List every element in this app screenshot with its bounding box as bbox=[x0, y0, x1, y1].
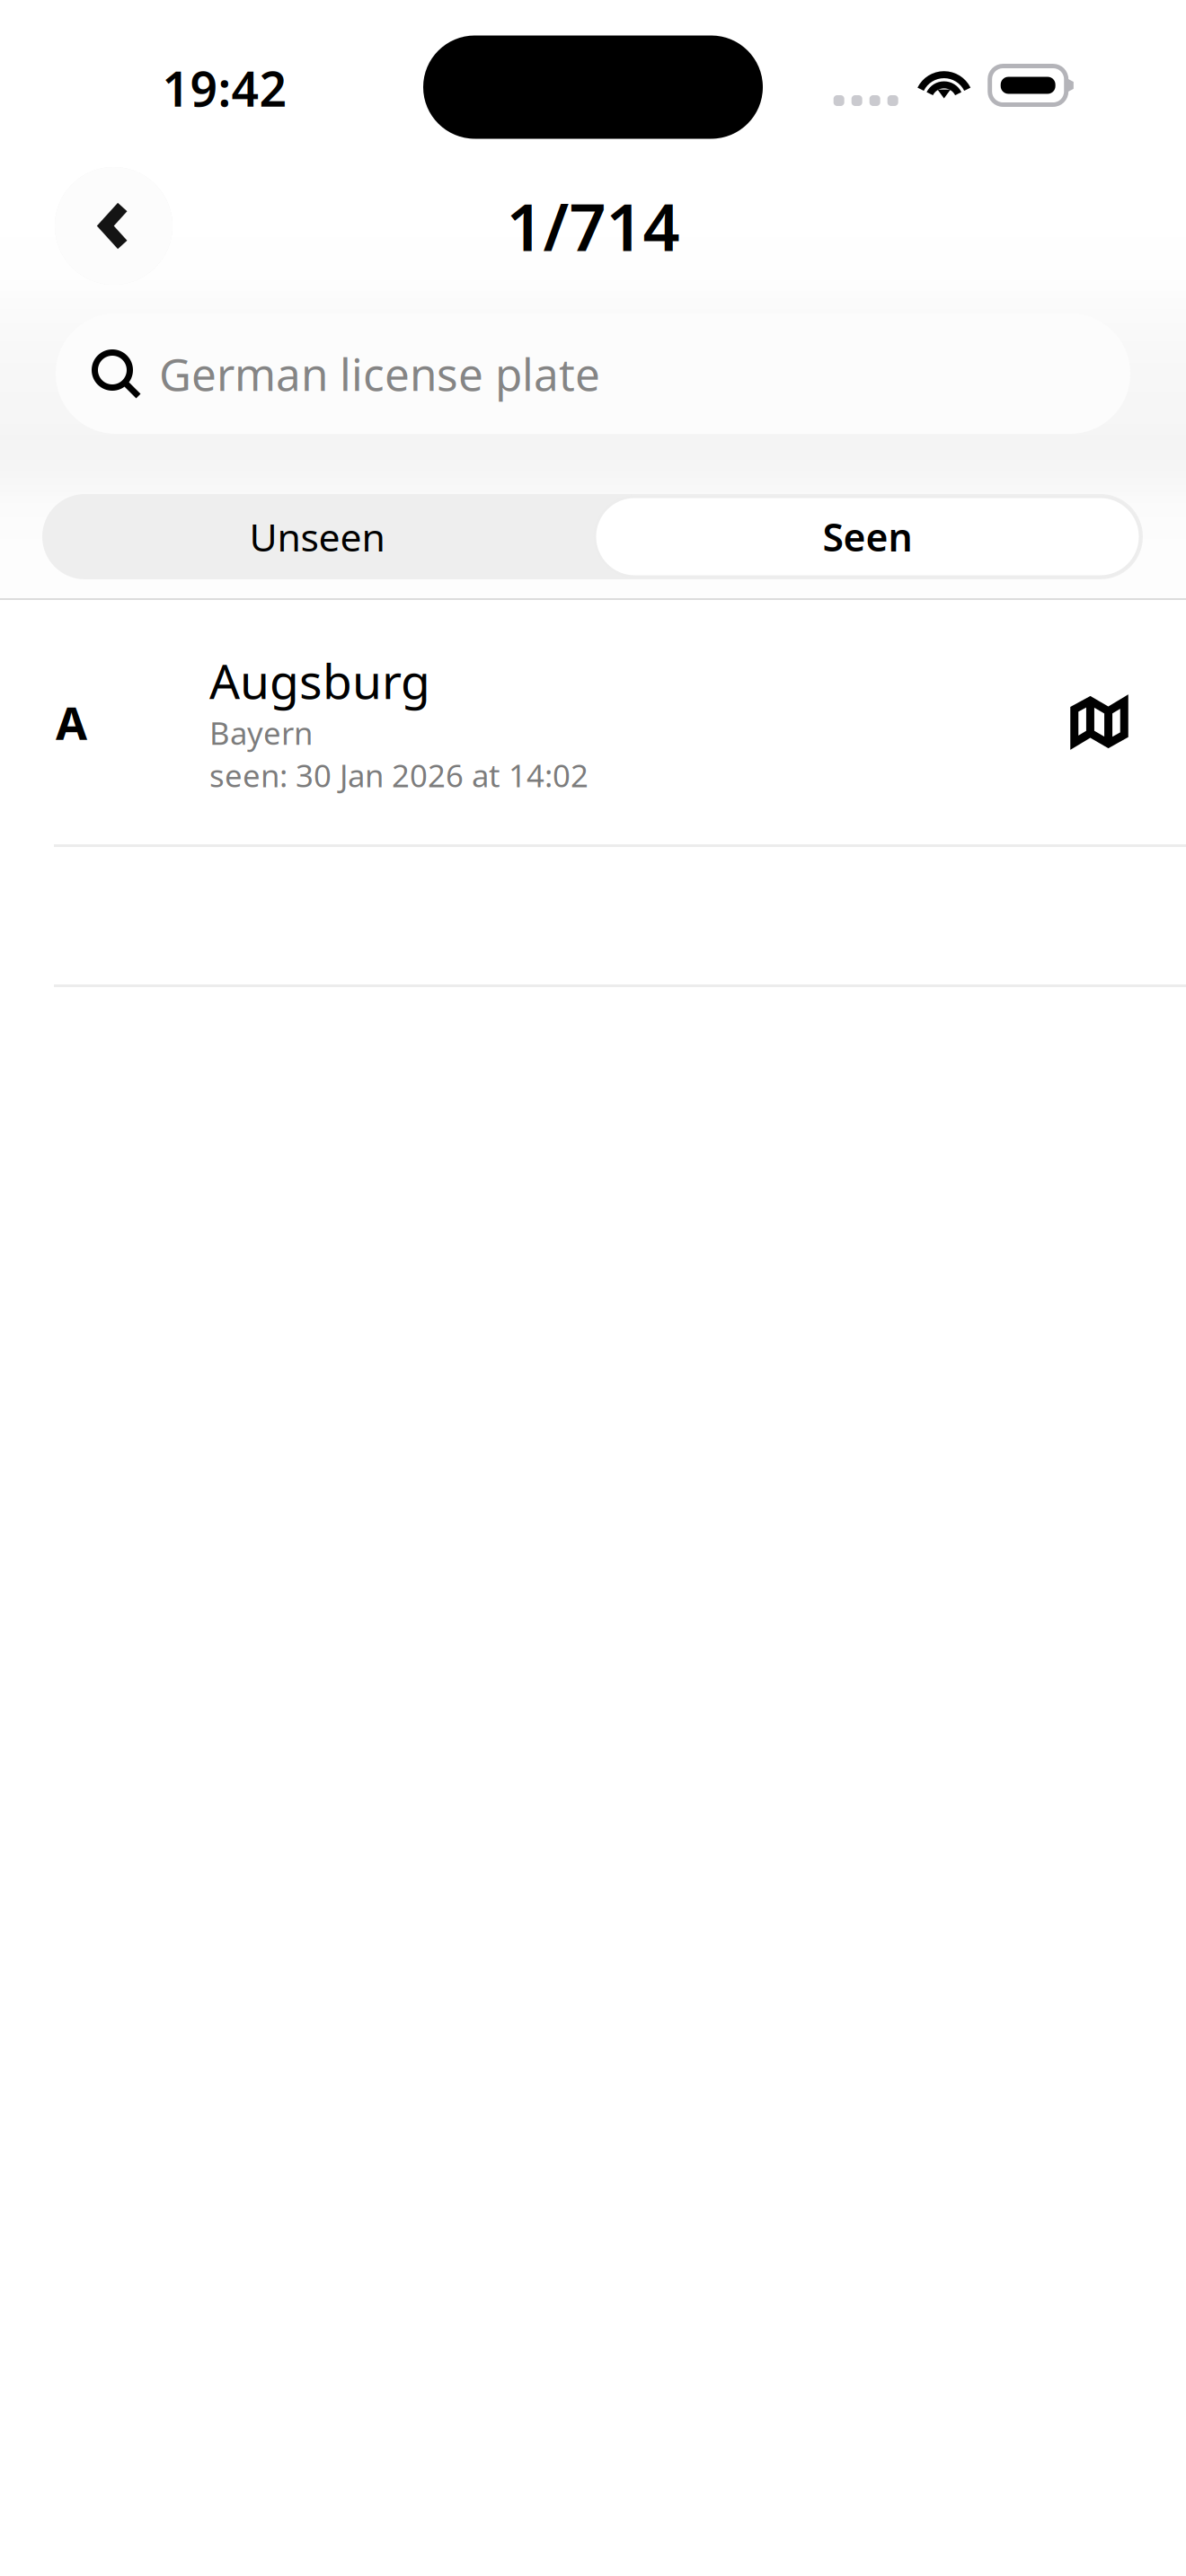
button[interactable]: A bbox=[0, 600, 1186, 844]
staticText: Seen bbox=[823, 511, 912, 562]
staticText: 1/714 bbox=[506, 183, 680, 269]
staticText: Augsburg bbox=[209, 649, 430, 712]
staticText: A bbox=[56, 692, 87, 752]
staticText: Unseen bbox=[249, 511, 385, 562]
button[interactable]: Unseen bbox=[42, 494, 592, 579]
staticText: German license plate bbox=[159, 344, 600, 403]
button[interactable]: Seen bbox=[592, 494, 1143, 579]
staticText: Bayern bbox=[209, 712, 313, 753]
staticText: 19:42 bbox=[162, 56, 287, 120]
staticText: seen: 30 Jan 2026 at 14:02 bbox=[209, 754, 589, 796]
button[interactable]: Back bbox=[55, 167, 173, 285]
